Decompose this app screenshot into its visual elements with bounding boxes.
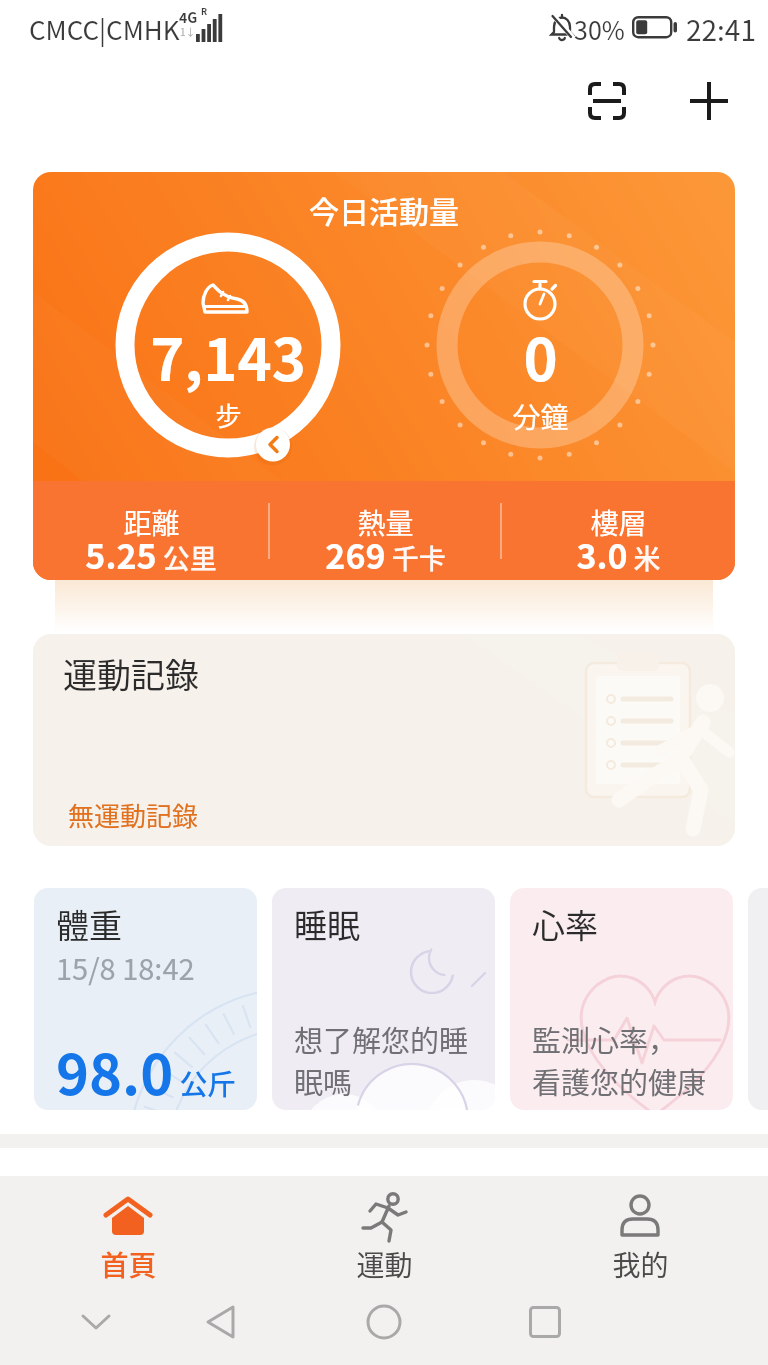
staticText: 今日活動量 <box>309 188 459 231</box>
button[interactable]: 睡眠 <box>272 888 495 1110</box>
staticText: 運動 <box>356 1244 413 1285</box>
staticText: 無運動記錄 <box>68 796 199 834</box>
button[interactable]: 首頁 <box>48 1180 208 1280</box>
staticText: 3.0 米 <box>576 530 661 579</box>
staticText: 監測心率， 看護您的健康 <box>532 1018 707 1102</box>
staticText: 0 <box>523 314 558 398</box>
staticText: CMCC|CMHK <box>29 10 180 48</box>
staticText: 體重 <box>56 900 122 948</box>
staticText: 分鐘 <box>512 396 569 437</box>
staticText: 樓層 <box>590 502 647 543</box>
staticText: 想了解您的睡 眠嗎 <box>294 1018 469 1102</box>
staticText: 98.0 公斤 <box>56 1030 236 1110</box>
staticText: 15/8 18:42 <box>56 946 195 988</box>
staticText: 距離 <box>123 502 180 543</box>
button[interactable] <box>190 1292 250 1352</box>
button[interactable] <box>515 1292 575 1352</box>
button[interactable]: 運動 <box>304 1180 464 1280</box>
staticText: 我的 <box>612 1244 669 1285</box>
staticText: 步 <box>215 396 242 434</box>
button[interactable] <box>583 77 631 125</box>
staticText: 5.25 公里 <box>85 530 217 579</box>
staticText: 運動記錄 <box>63 649 199 698</box>
staticText: 熱量 <box>357 502 414 543</box>
staticText: 30% <box>574 11 625 47</box>
staticText: 1↓ <box>180 24 196 38</box>
staticText: 4G <box>179 7 198 27</box>
button[interactable] <box>354 1292 414 1352</box>
staticText: 首頁 <box>100 1244 157 1285</box>
button[interactable]: 今日活動量 <box>33 172 735 580</box>
staticText: 22:41 <box>686 9 756 50</box>
staticText: 269 千卡 <box>325 530 446 579</box>
button[interactable]: 我的 <box>560 1180 720 1280</box>
button[interactable] <box>685 77 733 125</box>
button[interactable]: 心率 <box>510 888 733 1110</box>
staticText: 心率 <box>532 900 598 948</box>
button[interactable] <box>66 1292 126 1352</box>
button[interactable]: 運動記錄 <box>33 634 735 846</box>
staticText: 7,143 <box>150 314 306 398</box>
staticText: R <box>201 5 208 18</box>
button[interactable]: 體重 <box>34 888 257 1110</box>
staticText: 睡眠 <box>294 900 360 948</box>
